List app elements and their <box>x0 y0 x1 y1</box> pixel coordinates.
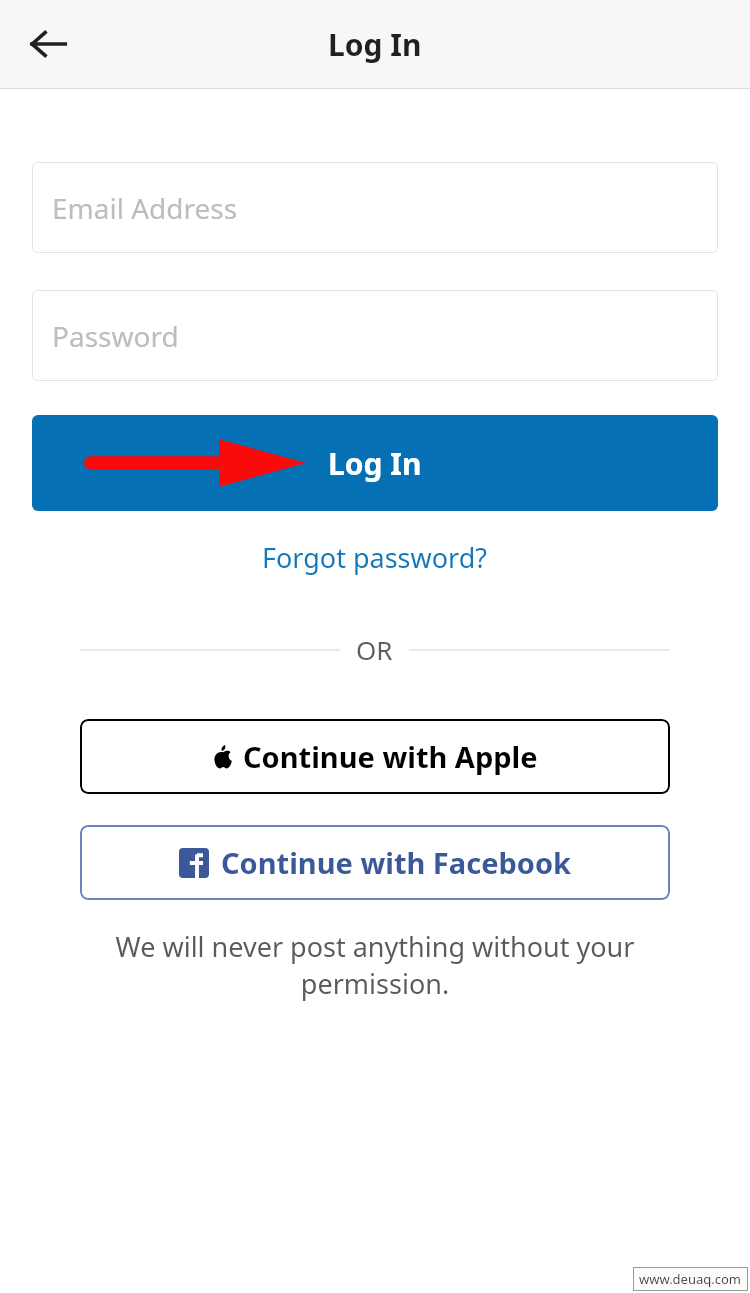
staticText: Log In <box>328 443 422 484</box>
staticText: www.deuaq.com <box>639 1270 742 1288</box>
button[interactable]: Password <box>32 290 718 381</box>
button[interactable]: Continue with Facebook <box>80 825 670 900</box>
staticText: We will never post anything without your… <box>60 928 690 1002</box>
staticText: Continue with Apple <box>243 737 538 776</box>
button[interactable]: Continue with Apple <box>80 719 670 794</box>
staticText: Log In <box>328 24 422 65</box>
button[interactable]: Log In <box>32 415 718 511</box>
staticText: Continue with Facebook <box>221 843 572 882</box>
button[interactable]: Email Address <box>32 162 718 253</box>
staticText: Password <box>52 317 179 355</box>
button[interactable]: Forgot password? <box>254 535 496 580</box>
staticText: OR <box>356 632 393 667</box>
button[interactable]: Back <box>16 12 80 76</box>
staticText: Email Address <box>52 189 238 227</box>
staticText: Forgot password? <box>262 539 488 576</box>
